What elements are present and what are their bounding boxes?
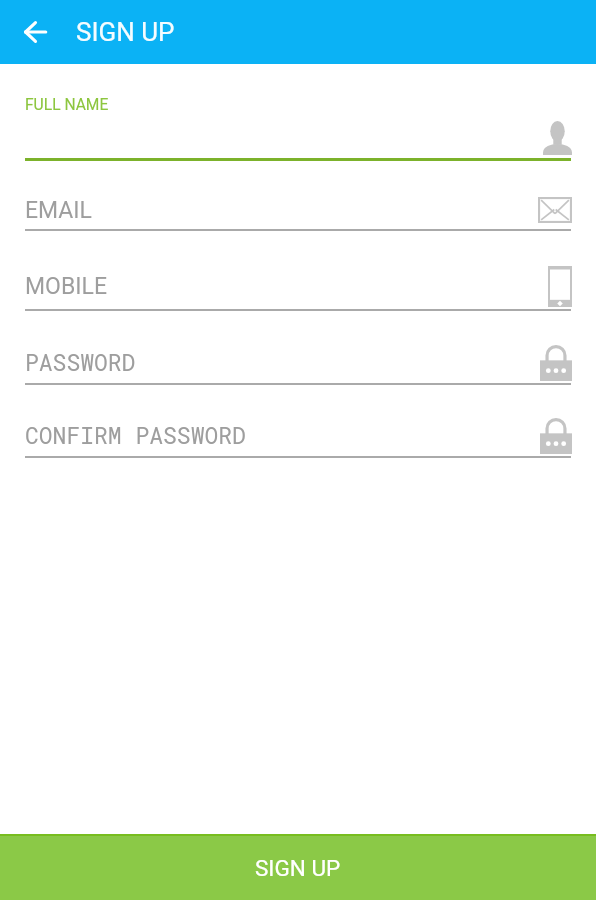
staticText: CONFIRM PASSWORD: [25, 420, 246, 450]
staticText: EMAIL: [25, 197, 93, 224]
staticText: SIGN UP: [255, 855, 341, 881]
button[interactable]: FULL NAME: [0, 76, 596, 161]
button[interactable]: PASSWORD: [0, 320, 596, 384]
staticText: SIGN UP: [76, 17, 175, 47]
staticText: PASSWORD: [25, 347, 136, 377]
button[interactable]: CONFIRM PASSWORD: [0, 394, 596, 458]
staticText: MOBILE: [25, 273, 107, 300]
staticText: FULL NAME: [25, 96, 109, 114]
button[interactable]: MOBILE: [0, 240, 596, 311]
button[interactable]: Navigate up: [0, 0, 60, 64]
button[interactable]: EMAIL: [0, 166, 596, 232]
button[interactable]: SIGN UP: [0, 834, 596, 900]
